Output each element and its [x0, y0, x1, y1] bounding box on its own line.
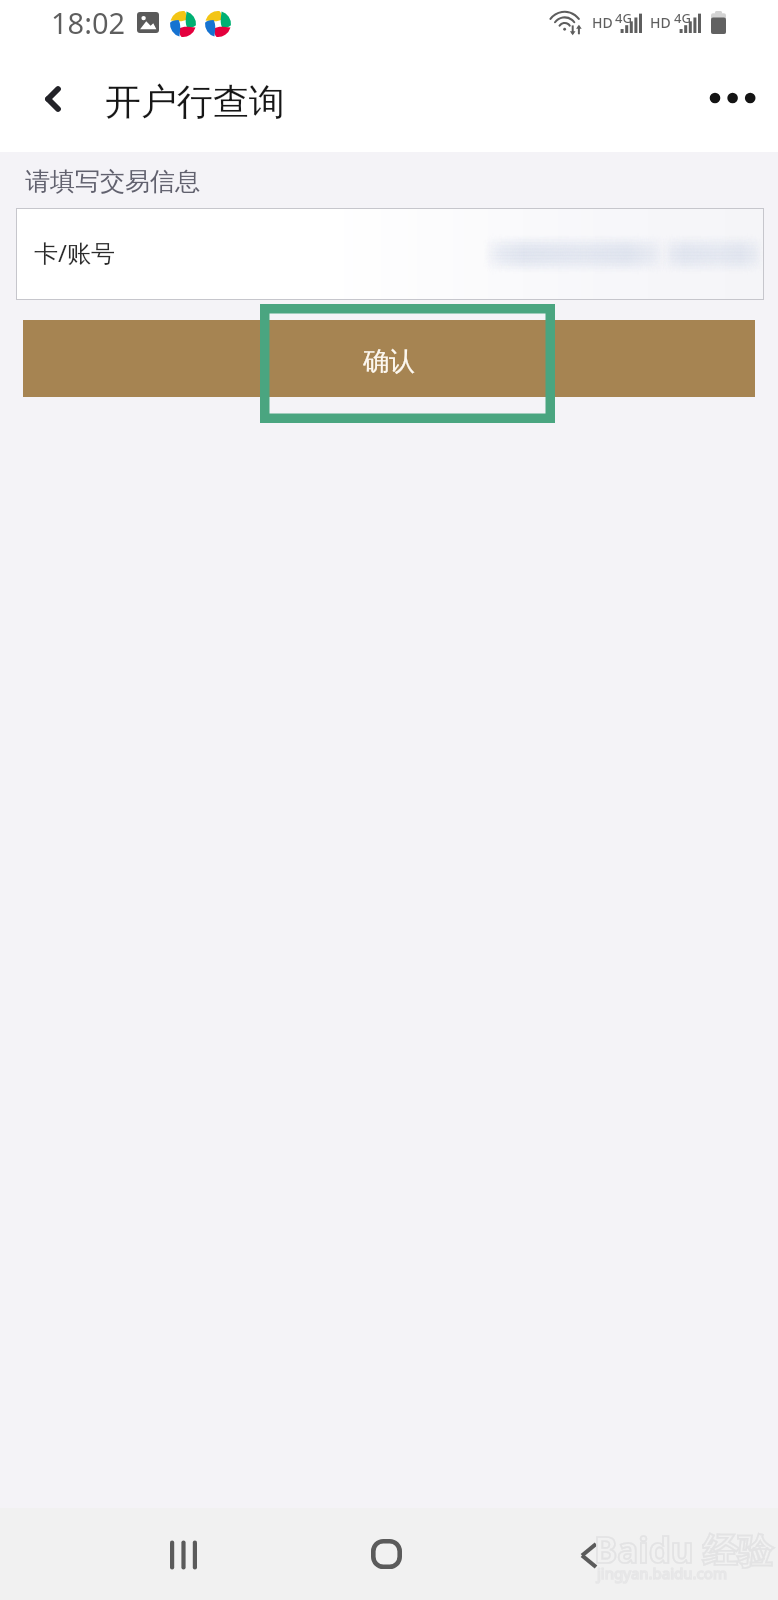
button[interactable]: Back: [543, 1510, 633, 1600]
staticText: 4G: [674, 9, 691, 27]
staticText: 开户行查询: [105, 79, 285, 124]
staticText: jingyan.baidu.com: [597, 1563, 727, 1583]
staticText: 18:02: [51, 3, 126, 42]
button[interactable]: 卡/账号: [16, 208, 764, 300]
button[interactable]: Back: [19, 65, 85, 131]
staticText: HD: [592, 13, 613, 32]
staticText: 4G: [615, 9, 632, 27]
staticText: 确认: [363, 345, 415, 378]
button[interactable]: More options: [694, 64, 770, 132]
button[interactable]: Recent apps: [138, 1510, 228, 1600]
button[interactable]: Home: [341, 1509, 431, 1599]
staticText: 卡/账号: [34, 236, 115, 269]
staticText: 请填写交易信息: [25, 166, 200, 197]
button[interactable]: 确认: [23, 320, 755, 397]
staticText: HD: [650, 13, 671, 32]
staticText: Baidu 经验: [594, 1526, 773, 1574]
